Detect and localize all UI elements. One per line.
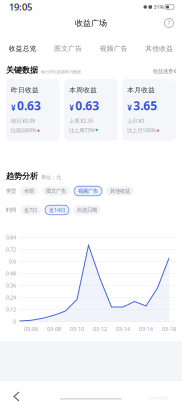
staticText: 自营42自媒 (148, 395, 168, 400)
staticText: 单位：元 (41, 174, 61, 180)
staticText: 图文广告 (54, 44, 82, 53)
staticText: 前日 ¥0.38 (11, 117, 35, 124)
staticText: 每日09点更新昨日数据 (41, 69, 81, 74)
staticText: 31% (153, 3, 163, 11)
staticText: ? (167, 19, 170, 27)
button[interactable]: 全部 (20, 186, 38, 196)
staticText: 0.36 (6, 282, 16, 289)
staticText: 0.24 (6, 294, 16, 301)
staticText: 自选日期 (77, 207, 97, 213)
staticText: 3.65 (133, 98, 157, 114)
staticText: 比前日69% (11, 127, 36, 134)
staticText: 本周收益 (69, 86, 97, 94)
staticText: 关键数据 (6, 65, 38, 75)
staticText: 趋势分析 (6, 171, 38, 181)
staticText: ¥ (69, 102, 74, 113)
button[interactable]: 近7日 (20, 205, 41, 215)
staticText: 03-12 (93, 325, 107, 333)
staticText: 03-14 (116, 325, 130, 333)
staticText: 0.48 (6, 270, 16, 277)
staticText: 0.72 (6, 246, 16, 253)
staticText: 收益总览 (9, 44, 37, 53)
staticText: 03-18 (162, 325, 176, 333)
staticText: 近7日 (24, 206, 37, 214)
staticText: 03-16 (139, 325, 153, 333)
staticText: 0.84 (6, 234, 16, 241)
staticText: 图文广告 (46, 188, 66, 194)
staticText: 昨日收益 (11, 86, 39, 94)
button[interactable]: 自选日期 (73, 205, 101, 215)
staticText: 0.63 (75, 98, 99, 114)
button[interactable]: 图文广告 (42, 186, 70, 196)
staticText: 03-06 (24, 325, 38, 333)
button[interactable]: 昨日收益 (6, 79, 60, 141)
button[interactable]: 其他收益 (106, 186, 134, 196)
staticText: 19:05 (9, 1, 32, 13)
staticText: 本月收益 (127, 86, 155, 94)
staticText: 0.6 (9, 258, 16, 265)
staticText: 其他收益 (110, 188, 130, 194)
staticText: 收益速查 (153, 68, 173, 74)
staticText: 近14日 (49, 206, 65, 214)
staticText: 比上周73% (69, 127, 94, 134)
staticText: 时间 (6, 207, 16, 213)
button[interactable]: 收益总览 (0, 32, 45, 54)
staticText: 全部 (24, 188, 34, 194)
staticText: 0 (13, 318, 16, 325)
staticText: 类型 (6, 188, 16, 194)
staticText: 其他收益 (145, 44, 173, 53)
button[interactable]: 其他收益 (136, 32, 182, 54)
staticText: 0.12 (6, 306, 16, 313)
staticText: 比上月100% (127, 127, 155, 134)
button[interactable]: 收益速查 (153, 68, 176, 75)
button[interactable]: 图文广告 (45, 32, 91, 54)
button[interactable]: 视频广告 (74, 186, 102, 196)
staticText: ¥ (127, 102, 132, 113)
staticText: 视频广告 (78, 188, 98, 194)
button[interactable]: 返回 (8, 386, 25, 404)
button[interactable]: 视频广告 (91, 32, 136, 54)
staticText: 收益广场 (75, 18, 107, 28)
staticText: 上月 ¥0 (127, 117, 144, 124)
button[interactable]: 本月收益 (122, 79, 176, 141)
staticText: 视频广告 (100, 44, 128, 53)
staticText: ¥ (11, 102, 16, 113)
button[interactable]: 帮助 (160, 14, 178, 32)
button[interactable]: 本周收益 (64, 79, 118, 141)
button[interactable]: 近14日 (45, 205, 69, 215)
staticText: 上周 ¥2.35 (69, 117, 93, 124)
staticText: 03-10 (70, 325, 84, 333)
staticText: 0.63 (17, 98, 41, 114)
staticText: 03-08 (47, 325, 61, 333)
